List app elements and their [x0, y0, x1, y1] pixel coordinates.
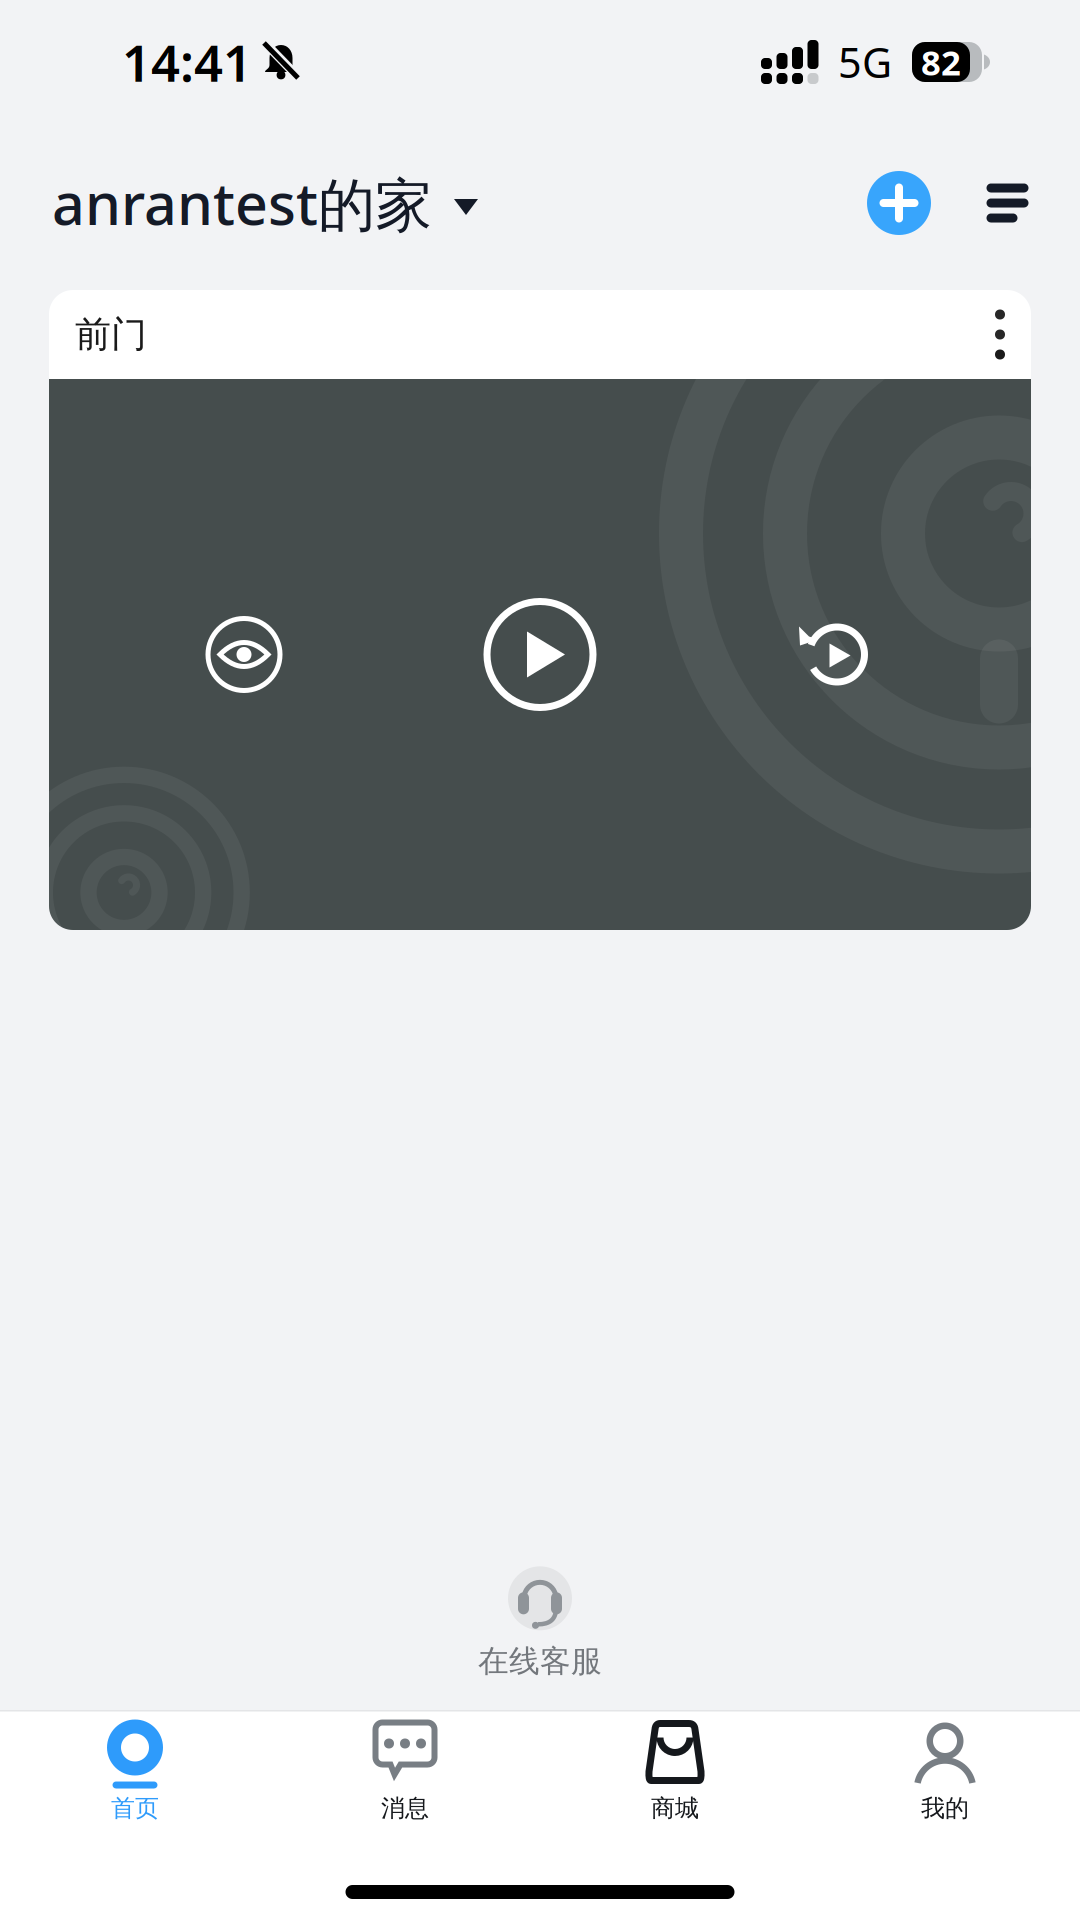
button[interactable]: Live view	[205, 616, 282, 693]
staticText: 我的	[921, 1793, 969, 1823]
staticText: 首页	[111, 1793, 159, 1823]
button[interactable]: 首页	[0, 1719, 270, 1823]
button[interactable]: 消息	[270, 1719, 540, 1823]
button[interactable]: Playback	[798, 615, 876, 693]
button[interactable]: Play	[483, 598, 596, 711]
button[interactable]: 在线客服	[478, 1566, 602, 1680]
button[interactable]: More options	[973, 295, 1027, 373]
staticText: 商城	[651, 1793, 699, 1823]
button[interactable]: Menu	[931, 184, 1028, 222]
button[interactable]: 商城	[540, 1719, 810, 1823]
staticText: 5G	[838, 35, 892, 89]
staticText: 82	[921, 39, 961, 85]
staticText: 前门	[75, 312, 147, 357]
button[interactable]: 我的	[810, 1719, 1080, 1823]
staticText: anrantest的家	[52, 165, 432, 241]
staticText: 在线客服	[478, 1642, 602, 1680]
button[interactable]: anrantest的家	[52, 165, 478, 241]
staticText: 14:41	[122, 28, 252, 96]
staticText: 消息	[381, 1793, 429, 1823]
button[interactable]: Add device	[867, 171, 931, 235]
